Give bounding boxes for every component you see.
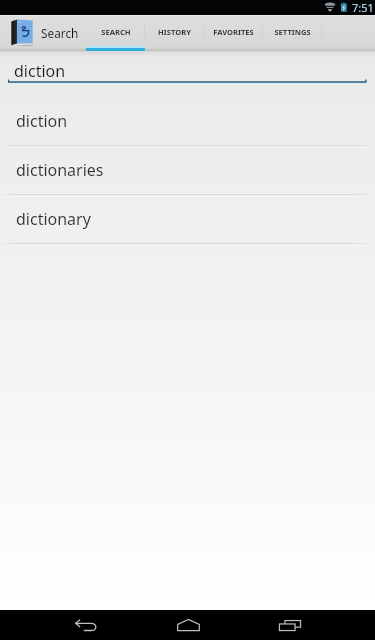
staticText: diction	[14, 60, 66, 82]
button[interactable]: FAVORITES	[204, 15, 263, 52]
button[interactable]: diction	[0, 52, 375, 92]
button[interactable]: Back	[68, 610, 104, 640]
button[interactable]: SETTINGS	[263, 15, 322, 52]
button[interactable]: diction	[0, 99, 375, 148]
staticText: diction	[16, 110, 68, 132]
staticText: FAVORITES	[213, 27, 254, 37]
button[interactable]: Recent apps	[272, 610, 308, 640]
button[interactable]: HISTORY	[145, 15, 204, 52]
button[interactable]: Home	[170, 610, 206, 640]
button[interactable]: dictionaries	[0, 148, 375, 197]
staticText: Search	[41, 25, 79, 41]
staticText: dictionary	[16, 208, 91, 230]
staticText: SEARCH	[101, 27, 131, 37]
staticText: dictionaries	[16, 159, 104, 181]
staticText: 7:51	[352, 0, 374, 15]
staticText: HISTORY	[158, 27, 191, 37]
button[interactable]: Search home	[0, 15, 84, 52]
button[interactable]: SEARCH	[86, 15, 145, 52]
staticText: SETTINGS	[274, 27, 311, 37]
button[interactable]: dictionary	[0, 197, 375, 246]
